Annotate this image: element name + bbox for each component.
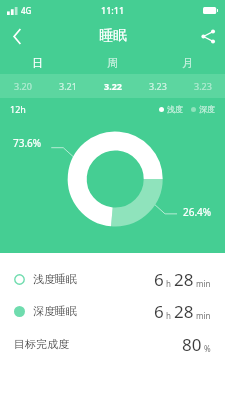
staticText: 73.6% [13,136,42,150]
staticText: 3.21 [59,80,77,92]
staticText: % [204,343,211,354]
staticText: 3.20 [14,80,32,92]
staticText: 11:11 [101,4,125,16]
staticText: 目标完成度 [14,337,69,351]
staticText: 4G [21,5,32,16]
staticText: 浅度睡眠 [33,272,77,286]
button[interactable]: 深度睡眠 [0,295,225,327]
staticText: 周 [107,56,118,70]
staticText: 月 [182,56,193,70]
button[interactable]: 日 [0,52,75,74]
staticText: h [166,310,171,321]
staticText: 28 [174,300,194,323]
staticText: h [166,278,171,289]
staticText: min [196,310,211,321]
staticText: 26.4% [183,205,212,219]
button[interactable]: 3.23 [135,74,180,98]
button[interactable]: Share [191,20,225,52]
staticText: 80 [182,333,202,356]
button[interactable]: 3.20 [0,74,45,98]
staticText: 3.23 [194,80,212,92]
button[interactable]: 周 [75,52,150,74]
staticText: 深度睡眠 [33,304,77,318]
button[interactable]: 3.22 [90,74,135,98]
staticText: min [196,278,211,289]
staticText: 深度 [199,104,215,114]
staticText: 浅度 [167,104,183,114]
staticText: 6 [154,300,164,323]
staticText: 3.23 [149,80,167,92]
button[interactable]: Back [0,20,34,52]
staticText: 12h [10,103,26,115]
staticText: 3.22 [104,80,122,92]
button[interactable]: 月 [150,52,225,74]
button[interactable]: 浅度睡眠 [0,263,225,295]
button[interactable]: 3.23 [180,74,225,98]
button[interactable]: 目标完成度 [0,327,225,361]
staticText: 睡眠 [99,27,127,45]
staticText: 28 [174,268,194,291]
staticText: 6 [154,268,164,291]
staticText: 日 [32,56,43,70]
button[interactable]: 3.21 [45,74,90,98]
